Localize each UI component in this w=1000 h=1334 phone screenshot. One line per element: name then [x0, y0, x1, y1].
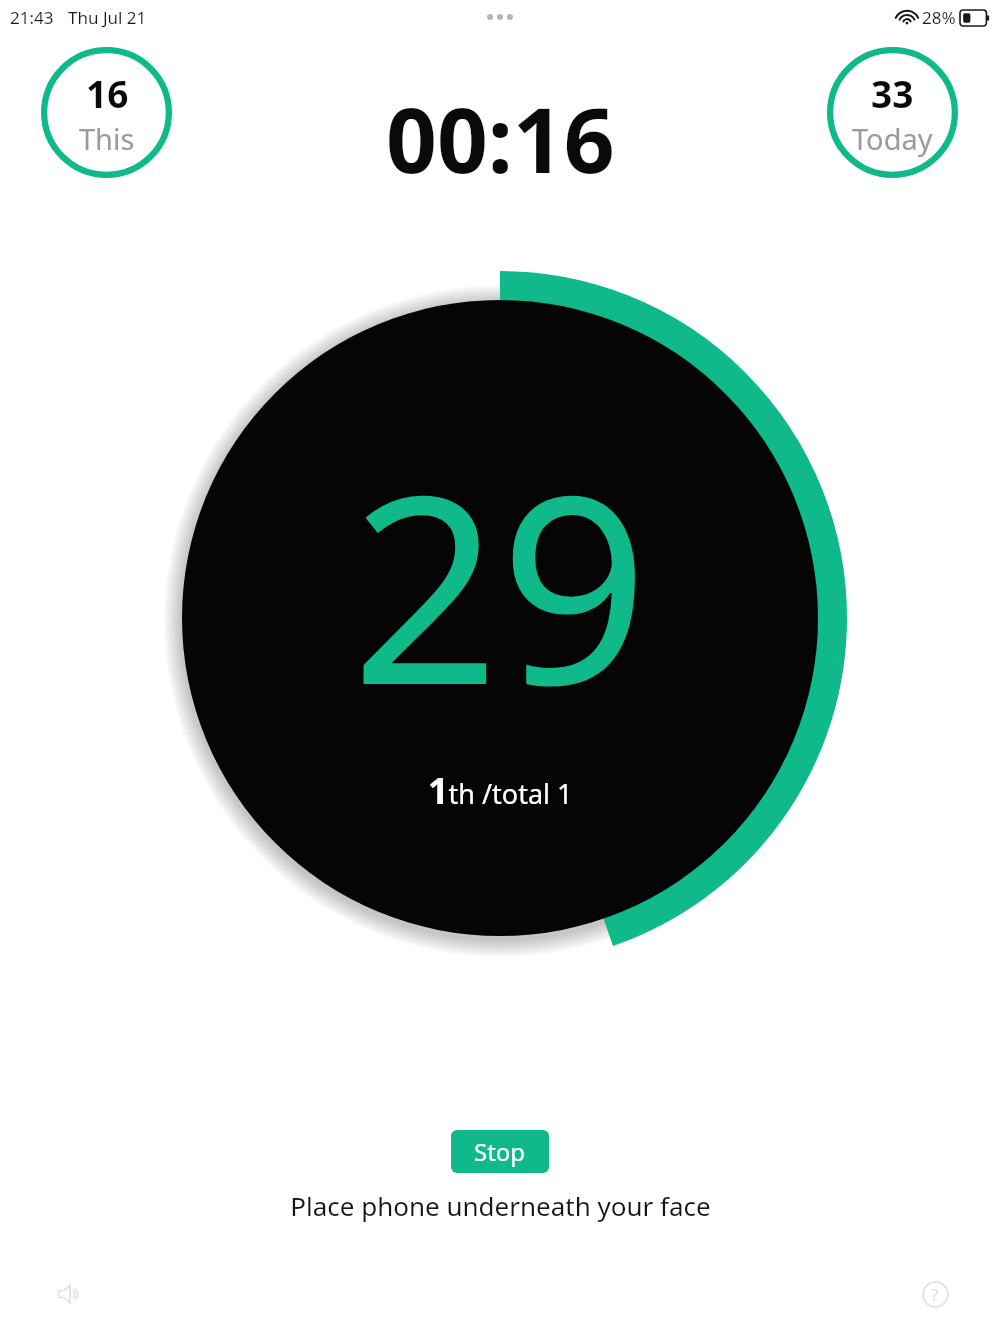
staticText: 00:16	[386, 78, 615, 199]
staticText: This	[79, 119, 135, 158]
button[interactable]: Stop	[451, 1130, 549, 1173]
staticText: 28%	[922, 6, 956, 29]
staticText: 16	[86, 68, 129, 118]
staticText: 33	[871, 68, 914, 118]
button[interactable]: 16	[41, 47, 172, 178]
staticText: Today	[852, 119, 933, 158]
staticText: 21:43	[10, 6, 54, 29]
button[interactable]: 33	[827, 47, 958, 178]
staticText: Place phone underneath your face	[290, 1188, 711, 1223]
button[interactable]: Help	[913, 1272, 957, 1316]
staticText: Thu Jul 21	[68, 6, 147, 29]
staticText: Stop	[474, 1135, 526, 1168]
button[interactable]: Sound	[48, 1272, 92, 1316]
staticText: ?	[931, 1283, 939, 1306]
staticText: 1th /total 1	[428, 766, 573, 815]
staticText: 29	[351, 406, 649, 760]
